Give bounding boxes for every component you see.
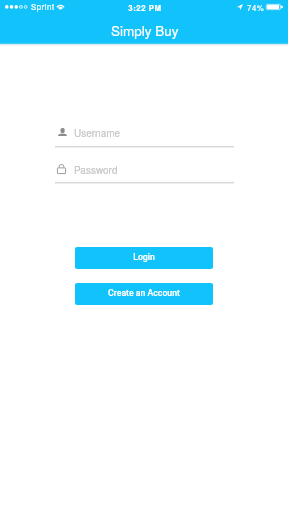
staticText: Create an Account <box>108 288 180 298</box>
other: Wi-Fi <box>56 4 65 10</box>
staticText: Simply Buy <box>111 21 179 40</box>
staticText: 3:22 PM <box>1 2 288 13</box>
other: Cellular signal <box>0 0 288 44</box>
other: Location services <box>237 4 243 10</box>
staticText: 74% <box>247 2 265 13</box>
button[interactable]: Login <box>75 247 213 269</box>
other: Battery 74 percent <box>266 4 283 10</box>
staticText: Password <box>74 163 118 177</box>
button[interactable]: Create an Account <box>75 283 213 305</box>
button[interactable]: Username <box>55 122 234 147</box>
button[interactable]: Password <box>55 158 234 184</box>
staticText: Sprint <box>31 1 55 12</box>
staticText: Username <box>74 126 121 140</box>
staticText: Login <box>133 252 155 262</box>
